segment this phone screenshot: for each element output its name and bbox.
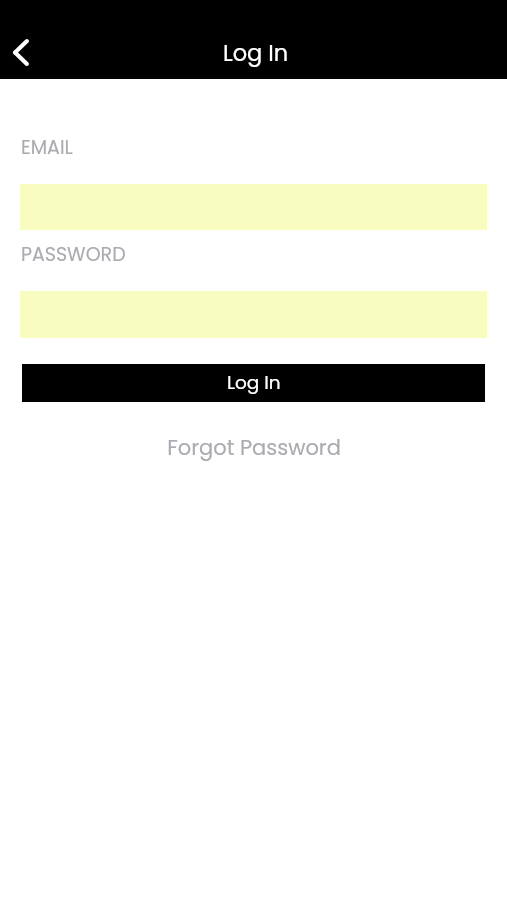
button[interactable]: Log In [22, 364, 485, 402]
button[interactable]: Back [0, 28, 41, 76]
staticText: Log In [223, 37, 289, 68]
staticText: PASSWORD [21, 241, 126, 268]
staticText: EMAIL [21, 134, 73, 161]
staticText: Forgot Password [167, 433, 341, 462]
staticText: Log In [227, 370, 281, 396]
button[interactable]: Forgot Password [155, 428, 353, 467]
